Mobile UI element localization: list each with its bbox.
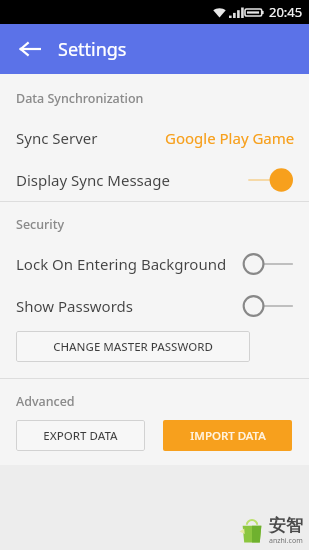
staticText: IMPORT DATA [190, 428, 266, 444]
button[interactable]: Toggle, off [239, 291, 295, 321]
button[interactable]: EXPORT DATA [16, 420, 145, 451]
staticText: 20:45 [269, 3, 303, 21]
staticText: anzhi.com [269, 536, 303, 546]
staticText: Security [16, 216, 65, 233]
button[interactable]: Toggle, off [239, 249, 295, 279]
staticText: Display Sync Message [16, 170, 170, 190]
staticText: Sync Server [16, 128, 98, 148]
button[interactable]: Display Sync Message [0, 159, 309, 201]
staticText: 安智 [269, 515, 303, 536]
button[interactable]: Lock On Entering Background [0, 243, 309, 285]
staticText: Data Synchronization [16, 90, 144, 107]
staticText: Lock On Entering Background [16, 254, 227, 274]
staticText: EXPORT DATA [43, 428, 118, 444]
staticText: Settings [58, 37, 127, 62]
button[interactable]: Sync Server [0, 117, 309, 159]
staticText: Google Play Game [165, 128, 295, 148]
button[interactable]: Show Passwords [0, 285, 309, 327]
staticText: Show Passwords [16, 296, 134, 316]
button[interactable]: IMPORT DATA [163, 420, 292, 451]
staticText: CHANGE MASTER PASSWORD [53, 339, 213, 355]
button[interactable]: Back [10, 29, 50, 69]
button[interactable]: Display Sync Message toggle, on [239, 165, 295, 195]
button[interactable]: CHANGE MASTER PASSWORD [16, 331, 250, 362]
staticText: Advanced [16, 393, 75, 410]
